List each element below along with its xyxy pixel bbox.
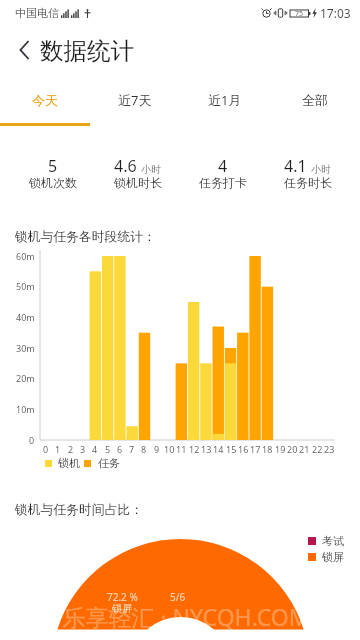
staticText: 40m: [16, 311, 35, 323]
button[interactable]: 近1月: [180, 80, 270, 126]
staticText: 4.6: [114, 155, 137, 177]
staticText: 11: [176, 443, 187, 455]
staticText: 任务时长: [284, 175, 332, 190]
staticText: 8: [141, 443, 147, 455]
staticText: 72.2 %: [107, 590, 138, 604]
staticText: 小时: [311, 163, 331, 176]
staticText: 10m: [16, 403, 35, 415]
button[interactable]: 4.1: [265, 155, 350, 192]
staticText: 50m: [16, 280, 35, 292]
staticText: 今天: [32, 92, 58, 108]
staticText: 23: [324, 443, 335, 455]
staticText: 0: [43, 443, 49, 455]
staticText: 15: [226, 443, 237, 455]
staticText: 20m: [16, 372, 35, 384]
staticText: 22: [312, 443, 323, 455]
staticText: 17:03: [320, 5, 351, 21]
staticText: 锁机与任务时间占比：: [15, 502, 143, 518]
staticText: 1: [55, 443, 61, 455]
staticText: 小时: [141, 163, 161, 176]
staticText: 4.1: [284, 155, 307, 177]
staticText: 14: [213, 443, 224, 455]
staticText: 2: [68, 443, 74, 455]
staticText: 5: [48, 155, 58, 177]
staticText: 4: [218, 155, 228, 177]
staticText: 数据统计: [40, 36, 134, 66]
staticText: 锁机与任务各时段统计：: [15, 229, 156, 245]
button[interactable]: 5: [10, 155, 95, 192]
staticText: 5/6: [170, 590, 186, 604]
staticText: 锁机: [58, 456, 80, 470]
staticText: 乐享轻汇 · NYCQH.COM: [62, 601, 310, 632]
staticText: 21: [299, 443, 310, 455]
button[interactable]: Back: [6, 32, 42, 68]
staticText: 锁屏: [112, 602, 132, 615]
staticText: 60m: [16, 250, 35, 262]
staticText: 5: [105, 443, 111, 455]
staticText: 3: [80, 443, 86, 455]
staticText: 全部: [302, 92, 328, 108]
staticText: 10: [164, 443, 175, 455]
staticText: 18: [262, 443, 273, 455]
staticText: 20: [287, 443, 298, 455]
staticText: 中国电信: [15, 6, 59, 20]
staticText: 6: [117, 443, 123, 455]
staticText: 7: [129, 443, 135, 455]
staticText: 近1月: [208, 91, 242, 109]
staticText: 19: [275, 443, 286, 455]
staticText: 任务打卡: [199, 175, 247, 190]
staticText: 30m: [16, 342, 35, 354]
staticText: 9: [154, 443, 160, 455]
staticText: 75: [295, 9, 304, 19]
button[interactable]: 今天: [0, 80, 90, 126]
staticText: 17: [250, 443, 261, 455]
button[interactable]: 4.6: [95, 155, 180, 192]
staticText: 锁屏: [322, 550, 344, 564]
staticText: 考试: [322, 534, 344, 548]
staticText: 4: [92, 443, 98, 455]
staticText: 0: [29, 434, 35, 446]
staticText: 13: [201, 443, 212, 455]
button[interactable]: 全部: [270, 80, 360, 126]
button[interactable]: 4: [180, 155, 265, 192]
staticText: 锁机次数: [29, 175, 77, 190]
staticText: 锁机时长: [114, 175, 162, 190]
staticText: 任务: [98, 456, 120, 470]
staticText: 16: [238, 443, 249, 455]
staticText: 近7天: [118, 91, 152, 109]
button[interactable]: 近7天: [90, 80, 180, 126]
staticText: 12: [189, 443, 200, 455]
